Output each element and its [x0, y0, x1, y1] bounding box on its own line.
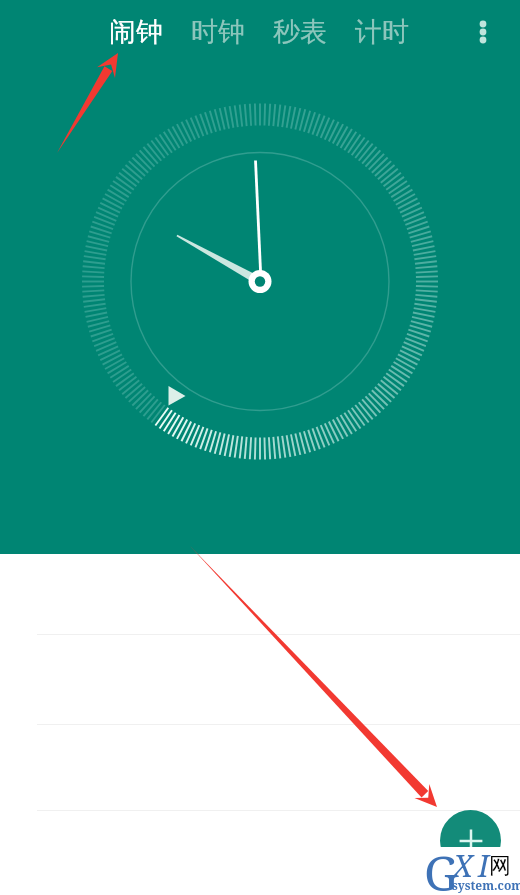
staticText: X	[453, 845, 473, 886]
button[interactable]: 时钟	[177, 5, 259, 59]
staticText: system.com	[452, 877, 520, 893]
button[interactable]: Add alarm	[440, 810, 501, 871]
button[interactable]: 闹钟	[95, 5, 177, 59]
staticText: 计时	[355, 15, 409, 49]
staticText: 网	[489, 852, 511, 880]
staticText: I	[478, 845, 490, 886]
staticText: 秒表	[273, 15, 327, 49]
staticText: 闹钟	[109, 15, 163, 49]
staticText: G	[424, 840, 459, 895]
button[interactable]: 计时	[341, 5, 423, 59]
staticText: 时钟	[191, 15, 245, 49]
button[interactable]: More options	[460, 9, 506, 55]
button[interactable]: 秒表	[259, 5, 341, 59]
